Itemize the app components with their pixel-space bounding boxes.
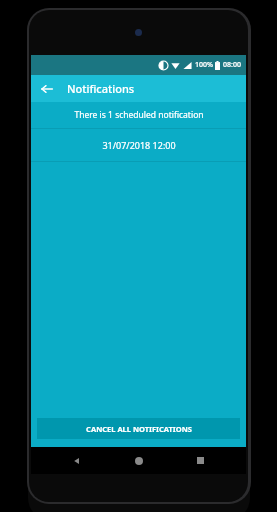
button[interactable]: Recent apps [185, 447, 215, 474]
staticText: There is 1 scheduled notification [74, 109, 204, 121]
button[interactable]: Back [62, 447, 92, 474]
staticText: 08:00 [223, 60, 241, 70]
staticText: Notifications [67, 81, 135, 96]
button[interactable]: CANCEL ALL NOTIFICATIONS [37, 418, 240, 439]
button[interactable]: 31/07/2018 12:00 [31, 129, 246, 161]
button[interactable]: Home [124, 447, 154, 474]
button[interactable]: There is 1 scheduled notification [31, 102, 246, 128]
staticText: 31/07/2018 12:00 [102, 139, 176, 151]
staticText: 100% [195, 60, 213, 70]
staticText: CANCEL ALL NOTIFICATIONS [86, 424, 192, 434]
button[interactable]: Back [36, 78, 58, 100]
